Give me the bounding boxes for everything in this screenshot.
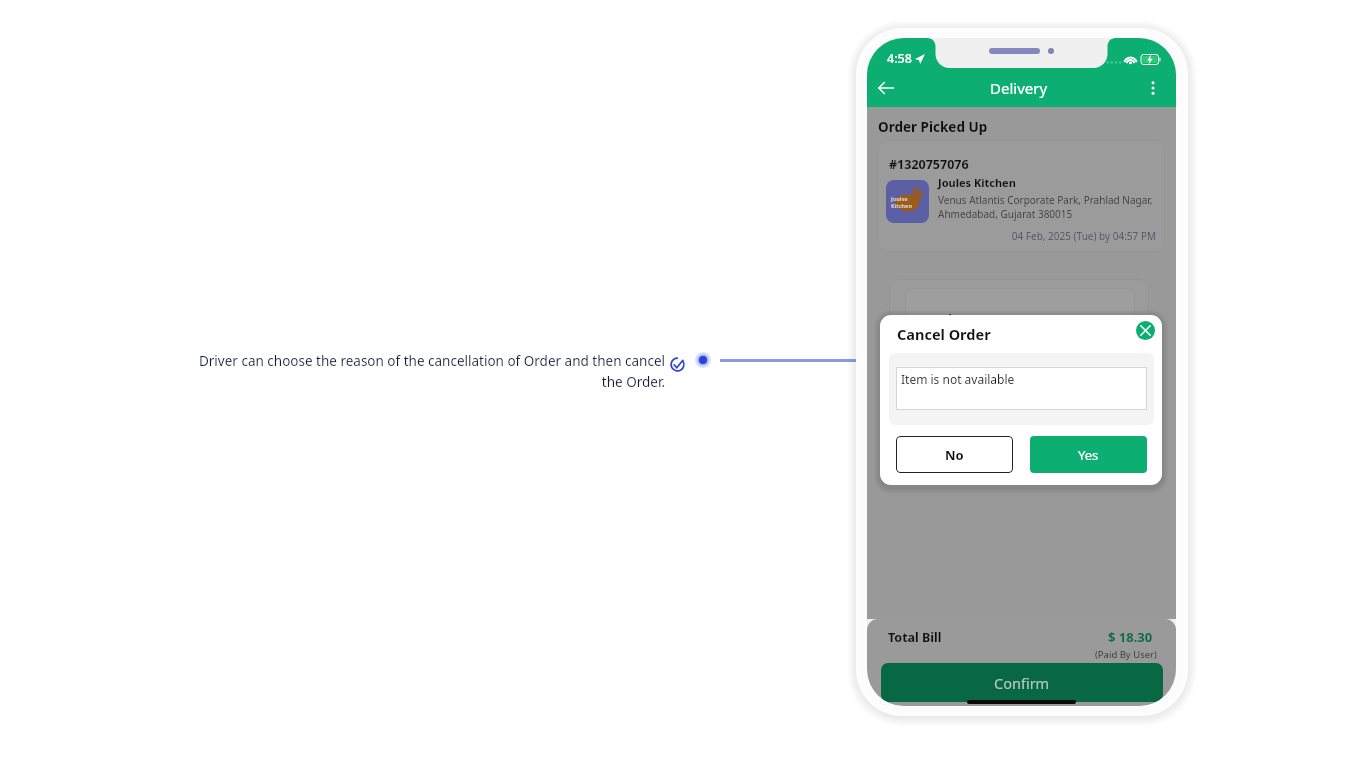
staticText: Joules Kitchen	[938, 175, 1016, 190]
button[interactable]: Select Store	[889, 279, 1149, 479]
button[interactable]: No	[896, 436, 1013, 473]
staticText: Item is not available	[901, 371, 1015, 387]
button[interactable]: #1320757076	[877, 140, 1165, 252]
button[interactable]: Back	[873, 75, 899, 101]
staticText: (Paid By User)	[1095, 648, 1157, 661]
staticText: Total Bill	[888, 629, 942, 646]
staticText: No	[945, 446, 964, 464]
button[interactable]: Close	[1136, 321, 1155, 340]
staticText: Venus Atlantis Corporate Park, Prahlad N…	[938, 193, 1158, 221]
staticText: $ 18.30	[1108, 628, 1153, 646]
staticText: Yes	[1078, 446, 1099, 464]
button[interactable]: More options	[1140, 75, 1166, 101]
staticText: Joules	[891, 195, 908, 202]
staticText: Order Picked Up	[878, 118, 988, 136]
staticText: Confirm	[994, 673, 1050, 693]
staticText: 4:58	[887, 50, 912, 67]
staticText: Select Store	[934, 311, 1008, 328]
staticText: Delivery	[990, 78, 1048, 98]
staticText: Cancel Order	[897, 324, 991, 344]
button[interactable]: Confirm	[881, 663, 1163, 702]
staticText: 04 Feb, 2025 (Tue) by 04:57 PM	[877, 229, 1156, 243]
button[interactable]: Yes	[1030, 436, 1147, 473]
staticText: #1320757076	[889, 156, 969, 173]
staticText: Driver can choose the reason of the canc…	[198, 352, 665, 391]
staticText: Kitchen	[891, 202, 912, 209]
